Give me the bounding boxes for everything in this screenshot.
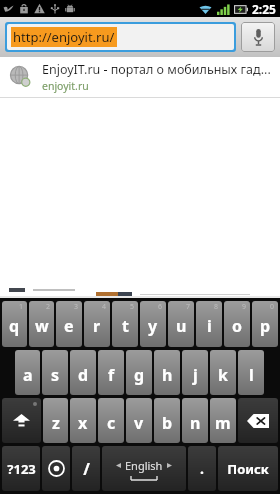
staticText: u	[176, 315, 187, 337]
button[interactable]: a	[15, 350, 40, 395]
button[interactable]: 5	[112, 301, 138, 347]
button[interactable]: g	[126, 350, 152, 395]
staticText: 7	[186, 302, 191, 312]
staticText: 6	[158, 302, 163, 312]
staticText: 1	[19, 302, 24, 312]
staticText: 2:25	[252, 1, 276, 17]
staticText: y	[148, 315, 158, 337]
staticText: c	[107, 412, 116, 434]
button[interactable]: b	[154, 398, 180, 443]
staticText: v	[134, 412, 144, 434]
staticText: k	[218, 364, 228, 386]
button[interactable]: Поиск	[218, 446, 278, 491]
staticText: s	[51, 364, 60, 386]
button[interactable]: k	[210, 350, 236, 395]
button[interactable]: 7	[168, 301, 194, 347]
button[interactable]: 8	[196, 301, 222, 347]
staticText: 3	[74, 302, 79, 312]
button[interactable]: ?123	[2, 446, 40, 491]
staticText: o	[232, 315, 243, 337]
button[interactable]: l	[238, 350, 264, 395]
staticText: m	[215, 412, 231, 434]
button[interactable]: 9	[224, 301, 250, 347]
staticText: Поиск	[227, 460, 269, 478]
button[interactable]: f	[98, 350, 124, 395]
staticText: x	[78, 412, 88, 434]
button[interactable]: Backspace	[238, 398, 278, 443]
staticText: e	[64, 315, 74, 337]
button[interactable]: 1	[2, 301, 27, 347]
button[interactable]: s	[42, 350, 68, 395]
staticText: f	[108, 364, 115, 386]
button[interactable]: h	[154, 350, 180, 395]
button[interactable]: v	[126, 398, 152, 443]
staticText: 0	[270, 302, 275, 312]
staticText: i	[207, 315, 212, 337]
staticText: l	[249, 364, 254, 386]
staticText: /	[83, 458, 90, 480]
button[interactable]: 2	[29, 301, 54, 347]
button[interactable]: EnjoyIT.ru - портал о мобильных гад...	[0, 57, 280, 97]
button[interactable]: 6	[140, 301, 166, 347]
button[interactable]: .	[188, 446, 216, 491]
button[interactable]: j	[182, 350, 208, 395]
button[interactable]: Shift	[2, 398, 41, 443]
button[interactable]: 0	[252, 301, 278, 347]
staticText: ?123	[7, 460, 36, 478]
staticText: EnjoyIT.ru - портал о мобильных гад...	[42, 61, 271, 78]
button[interactable]: /	[72, 446, 100, 491]
button[interactable]: x	[70, 398, 96, 443]
button[interactable]: m	[210, 398, 236, 443]
button[interactable]: z	[43, 398, 68, 443]
button[interactable]: n	[182, 398, 208, 443]
staticText: 8	[214, 302, 219, 312]
staticText: 9	[242, 302, 247, 312]
staticText: 4	[102, 302, 107, 312]
staticText: 5	[130, 302, 135, 312]
staticText: English	[125, 458, 163, 473]
staticText: p	[260, 315, 271, 337]
staticText: t	[122, 315, 129, 337]
button[interactable]: d	[70, 350, 96, 395]
button[interactable]: c	[98, 398, 124, 443]
button[interactable]: http://enjoyit.ru/	[7, 24, 234, 50]
button[interactable]: Voice search	[241, 22, 275, 52]
staticText: 2	[46, 302, 51, 312]
staticText: z	[52, 412, 60, 434]
button[interactable]: 4	[84, 301, 110, 347]
staticText: d	[78, 364, 89, 386]
staticText: w	[35, 315, 49, 337]
staticText: .	[200, 459, 204, 478]
staticText: b	[162, 412, 173, 434]
staticText: http://enjoyit.ru/	[13, 28, 115, 46]
staticText: j	[193, 364, 198, 386]
staticText: n	[190, 412, 201, 434]
staticText: enjoyit.ru	[42, 79, 89, 93]
staticText: r	[93, 315, 101, 337]
staticText: a	[23, 364, 33, 386]
staticText: h	[162, 364, 173, 386]
button[interactable]: 3	[56, 301, 82, 347]
button[interactable]: Emoji	[42, 446, 70, 491]
staticText: g	[134, 364, 145, 386]
button[interactable]: Space, English	[102, 446, 186, 491]
staticText: q	[9, 315, 20, 337]
